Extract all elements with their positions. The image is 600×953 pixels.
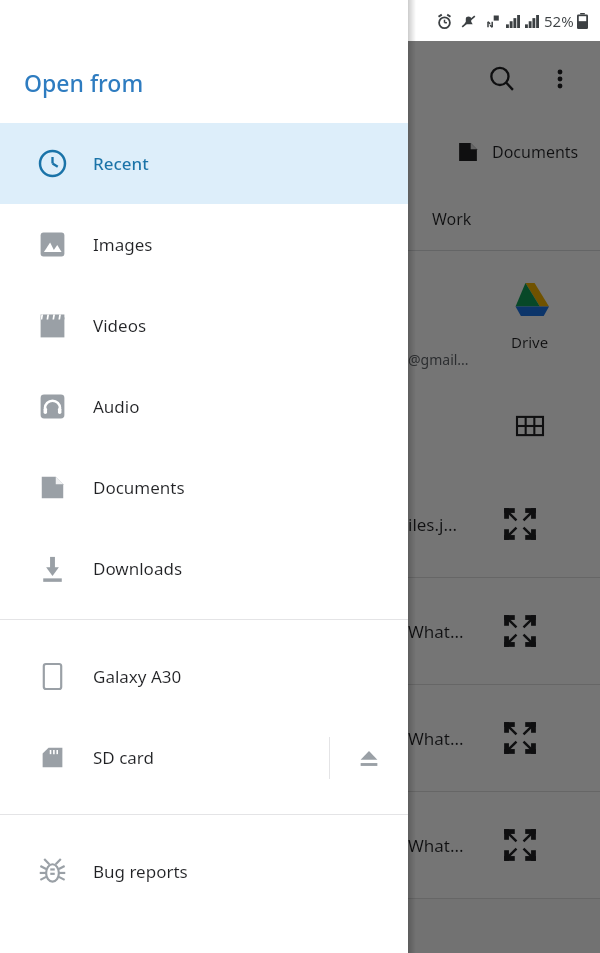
staticText: Galaxy A30 [93, 665, 182, 688]
staticText: What... [408, 620, 464, 643]
staticText: Drive [511, 332, 549, 352]
button[interactable]: More options [540, 59, 580, 99]
staticText: 52% [544, 11, 574, 31]
staticText: @gmail... [408, 350, 469, 369]
button[interactable]: SD card [0, 717, 408, 798]
button[interactable] [380, 129, 424, 175]
button[interactable]: Recent [0, 123, 408, 204]
button[interactable]: Search [478, 55, 526, 103]
button[interactable]: Galaxy A30 [0, 636, 408, 717]
button[interactable]: Bug reports [0, 831, 408, 912]
button[interactable]: Videos [0, 285, 408, 366]
staticText: Bug reports [93, 860, 188, 883]
button[interactable]: Documents [456, 129, 579, 175]
staticText: Videos [93, 314, 147, 337]
button[interactable]: Eject SD card [330, 717, 408, 798]
button[interactable]: What... [0, 578, 600, 684]
staticText: What... [408, 727, 464, 750]
button[interactable]: Audio [0, 366, 408, 447]
staticText: Audio [93, 395, 140, 418]
staticText: iles.j... [408, 513, 458, 536]
button[interactable]: Images [0, 204, 408, 285]
staticText: SD card [93, 746, 154, 769]
staticText: What... [408, 834, 464, 857]
button[interactable]: Documents [0, 447, 408, 528]
staticText: Recent [93, 152, 149, 175]
button[interactable]: iles.j... [0, 471, 600, 577]
button[interactable]: What... [0, 685, 600, 791]
staticText: Open from [24, 67, 144, 98]
staticText: Documents [93, 476, 185, 499]
staticText: Images [93, 233, 153, 256]
staticText: Downloads [93, 557, 183, 580]
staticText: Documents [492, 141, 579, 163]
button[interactable]: Downloads [0, 528, 408, 609]
button[interactable]: What... [0, 792, 600, 898]
staticText: Work [432, 208, 472, 230]
